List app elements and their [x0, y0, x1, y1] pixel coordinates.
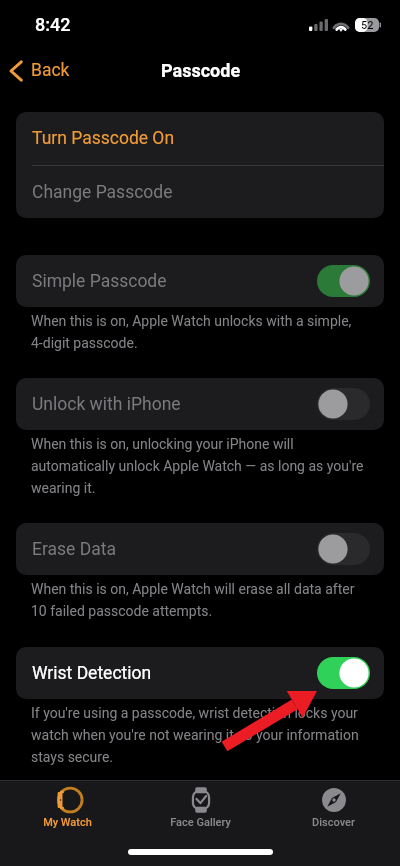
button[interactable]: Wrist Detection: [16, 647, 384, 699]
staticText: Face Gallery: [170, 816, 231, 829]
button[interactable]: Face Gallery tab: [134, 780, 267, 829]
staticText: Erase Data: [32, 539, 116, 560]
button[interactable]: Discover tab: [267, 780, 400, 829]
staticText: When this is on, Apple Watch will erase …: [31, 581, 376, 620]
staticText: 52: [361, 19, 374, 32]
button[interactable]: Unlock with iPhone: [16, 378, 384, 430]
button[interactable]: My Watch tab: [0, 780, 134, 829]
button[interactable]: Turn Passcode On: [16, 112, 384, 165]
staticText: When this is on, Apple Watch unlocks wit…: [31, 313, 376, 352]
staticText: When this is on, unlocking your iPhone w…: [31, 436, 376, 497]
staticText: Unlock with iPhone: [32, 394, 181, 415]
staticText: Discover: [312, 816, 355, 829]
staticText: Change Passcode: [32, 182, 173, 203]
staticText: If you're using a passcode, wrist detect…: [31, 705, 376, 766]
button[interactable]: Back: [4, 54, 78, 87]
button[interactable]: Erase Data: [16, 523, 384, 575]
staticText: Simple Passcode: [32, 271, 167, 292]
staticText: My Watch: [43, 816, 92, 829]
staticText: Turn Passcode On: [32, 128, 175, 149]
staticText: Passcode: [161, 60, 241, 81]
staticText: Back: [31, 60, 70, 81]
staticText: 8:42: [35, 14, 71, 35]
button[interactable]: Simple Passcode: [16, 255, 384, 307]
staticText: Wrist Detection: [32, 663, 152, 684]
button[interactable]: Change Passcode: [16, 166, 384, 218]
